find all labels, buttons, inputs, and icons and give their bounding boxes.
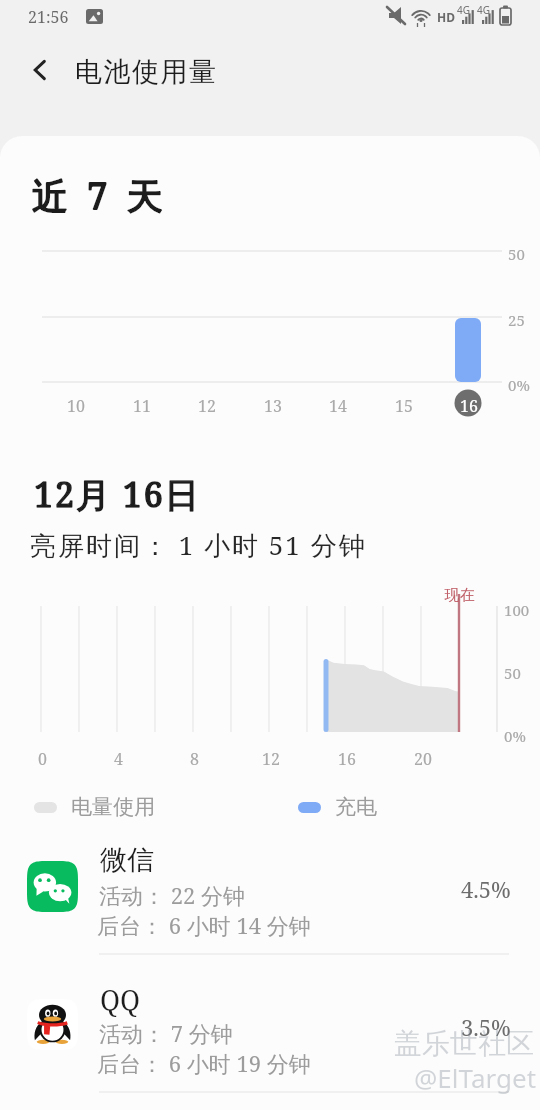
staticText: 现在 — [444, 586, 475, 605]
staticText: 13 — [264, 395, 282, 417]
staticText: 充电 — [335, 794, 377, 820]
staticText: 微信 — [100, 843, 154, 877]
staticText: 14 — [329, 395, 347, 417]
staticText: 0% — [508, 375, 530, 395]
staticText: 100 — [504, 600, 530, 620]
staticText: 电池使用量 — [75, 55, 218, 89]
staticText: 11 — [133, 395, 151, 417]
staticText: 12 — [198, 395, 216, 417]
button[interactable]: QQ — [0, 978, 540, 1110]
staticText: 12月 16日 — [34, 471, 201, 517]
staticText: 盖乐世社区 — [394, 1026, 534, 1061]
staticText: 4.5% — [461, 874, 511, 904]
button[interactable]: 充电 — [298, 794, 377, 820]
staticText: 后台： 6 小时 14 分钟 — [97, 910, 311, 940]
staticText: HD — [437, 9, 455, 25]
staticText: 后台： 6 小时 19 分钟 — [97, 1048, 311, 1078]
staticText: 0% — [504, 726, 526, 746]
staticText: 4G — [457, 3, 470, 17]
staticText: 15 — [395, 395, 413, 417]
staticText: 4 — [114, 748, 123, 770]
button[interactable]: 电量使用 — [34, 794, 155, 820]
staticText: 50 — [504, 663, 521, 683]
staticText: 0 — [38, 748, 47, 770]
staticText: 12 — [262, 748, 280, 770]
staticText: 4G — [477, 3, 490, 17]
staticText: 近 7 天 — [32, 171, 168, 220]
staticText: 活动： 7 分钟 — [99, 1018, 233, 1048]
staticText: 16 — [460, 395, 478, 417]
staticText: 12月 16日 — [34, 471, 201, 517]
staticText: 电量使用 — [71, 794, 155, 820]
staticText: 20 — [414, 748, 432, 770]
staticText: 50 — [508, 244, 525, 264]
staticText: 16 — [338, 748, 356, 770]
staticText: 21:56 — [28, 6, 69, 28]
staticText: 活动： 22 分钟 — [99, 880, 246, 910]
staticText: @ElTarget — [414, 1060, 537, 1095]
staticText: 亮屏时间： 1 小时 51 分钟 — [30, 527, 367, 563]
button[interactable]: 微信 — [0, 840, 540, 978]
button[interactable]: Back — [17, 47, 63, 93]
staticText: 近 7 天 — [32, 171, 168, 220]
staticText: 25 — [508, 310, 525, 330]
staticText: 3.5% — [461, 1012, 511, 1042]
staticText: 10 — [67, 395, 85, 417]
staticText: 8 — [190, 748, 199, 770]
staticText: QQ — [100, 981, 141, 1018]
